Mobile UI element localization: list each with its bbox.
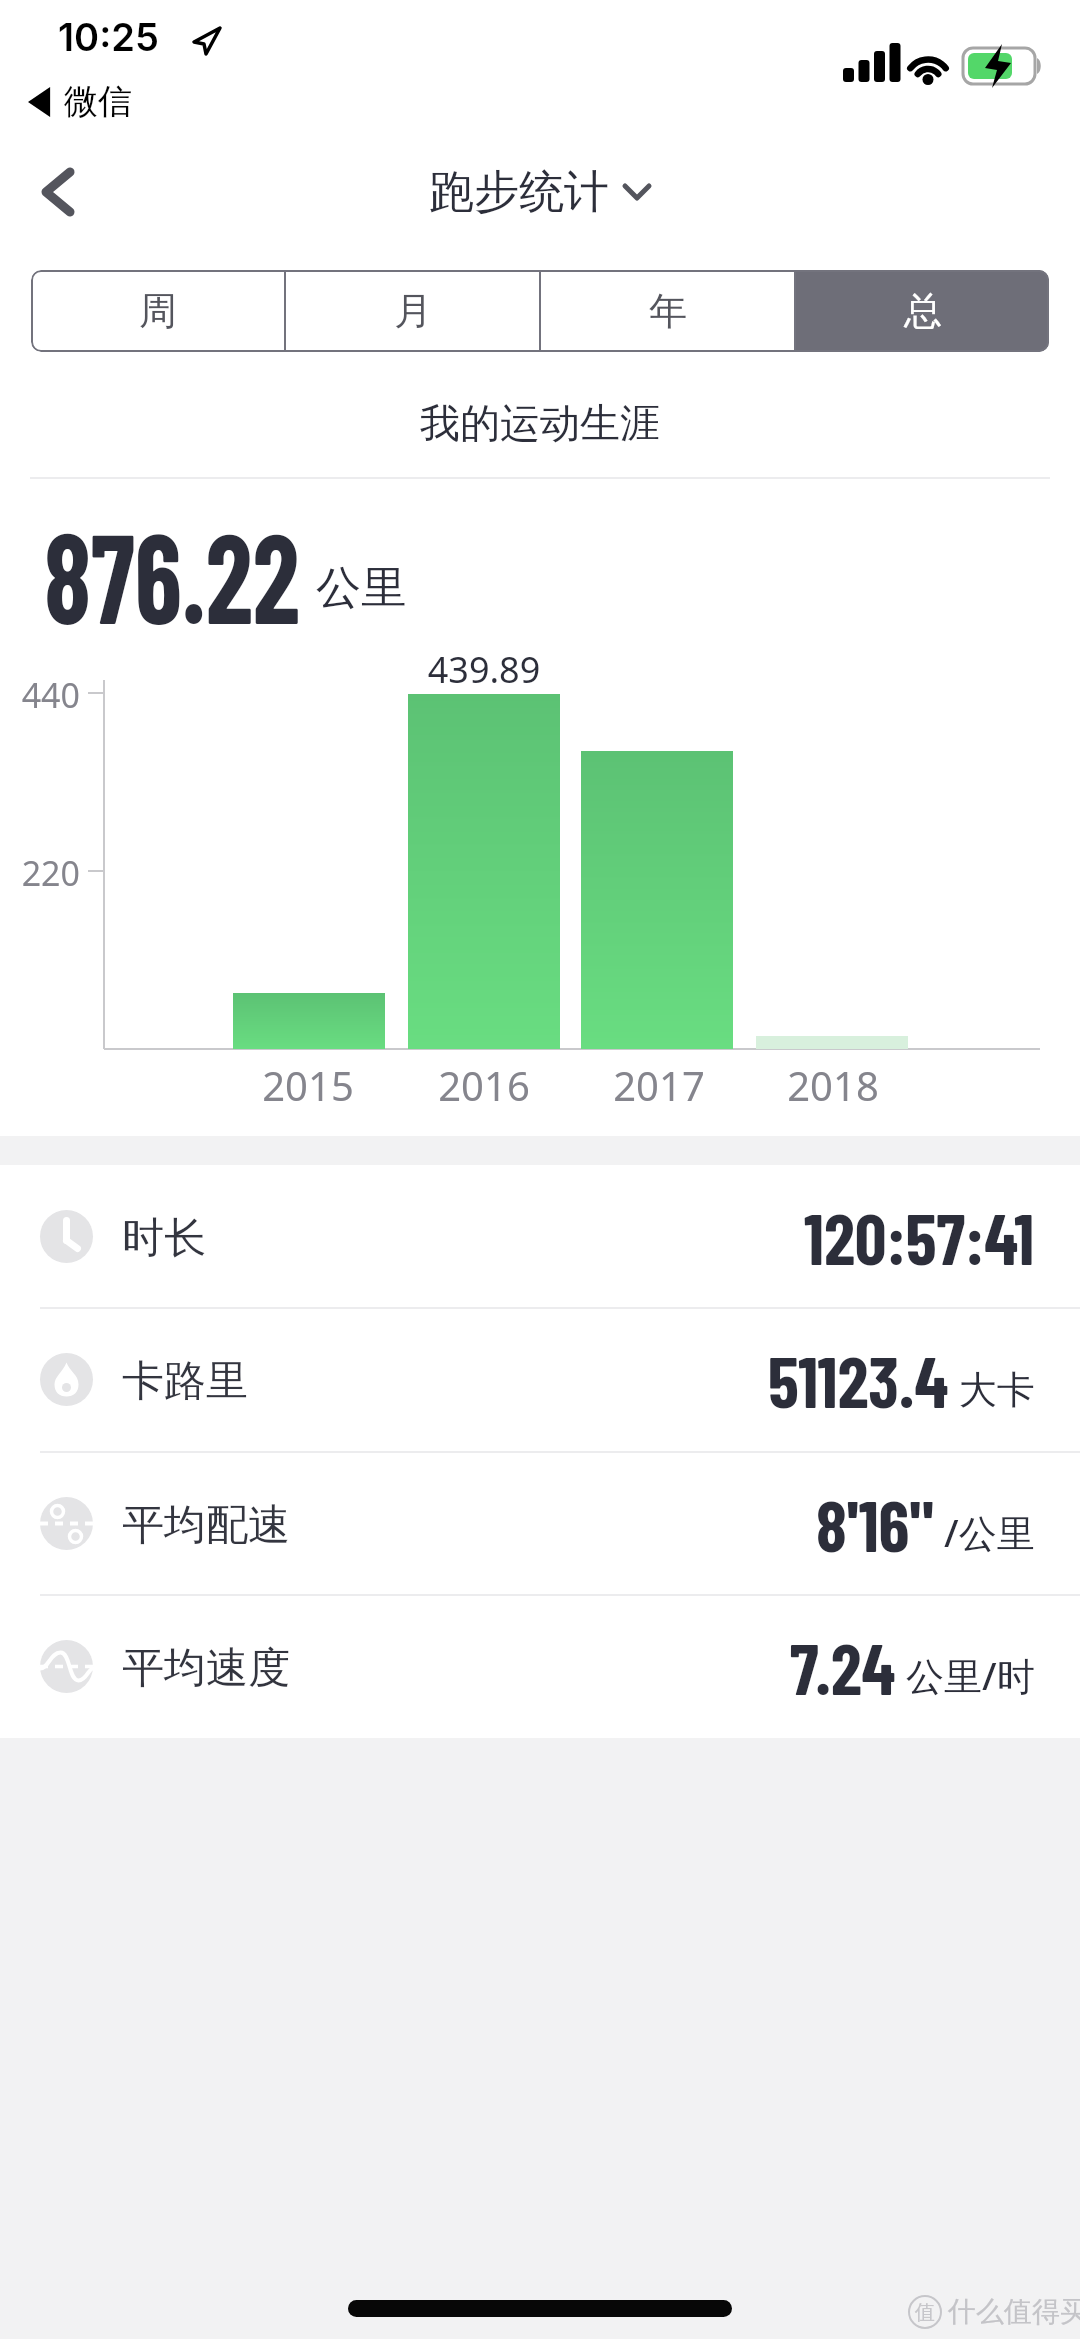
staticText: 卡路里 [122, 1355, 248, 1408]
button[interactable]: 时长 [0, 1165, 1080, 1308]
staticText: 7.24 [790, 1625, 896, 1709]
staticText: 2017 [583, 1058, 735, 1112]
staticText: 大卡 [959, 1366, 1035, 1414]
button[interactable]: 周 [31, 270, 284, 352]
staticText: 平均配速 [122, 1499, 290, 1552]
staticText: 2015 [232, 1058, 384, 1112]
button[interactable]: 平均速度 [0, 1595, 1080, 1738]
staticText: 10:25 [58, 14, 159, 60]
staticText: 我的运动生涯 [420, 398, 660, 448]
staticText: 公里/时 [906, 1649, 1035, 1701]
staticText: 跑步统计 [429, 164, 609, 221]
staticText: 公里 [316, 560, 406, 617]
staticText: 总 [904, 287, 942, 335]
button[interactable] [30, 160, 90, 224]
staticText: 时长 [122, 1212, 206, 1265]
staticText: 周 [139, 287, 177, 335]
staticText: 8'16" [816, 1482, 934, 1566]
staticText: 51123.4 [768, 1338, 949, 1422]
staticText: 2016 [408, 1058, 560, 1112]
button[interactable]: 卡路里 [0, 1308, 1080, 1451]
button[interactable]: 平均配速 [0, 1452, 1080, 1595]
staticText: 值 [915, 2300, 935, 2325]
button[interactable]: 跑步统计 [0, 162, 1080, 222]
staticText: 微信 [64, 80, 132, 123]
button[interactable]: 年 [541, 270, 794, 352]
button[interactable]: 月 [286, 270, 539, 352]
staticText: 年 [649, 287, 687, 335]
staticText: 440 [0, 672, 80, 718]
staticText: 什么值得买 [948, 2294, 1080, 2329]
staticText: 平均速度 [122, 1642, 290, 1695]
staticText: 876.22 [44, 498, 300, 649]
staticText: 120:57:41 [804, 1195, 1035, 1279]
button[interactable]: 总 [796, 270, 1049, 352]
staticText: 220 [0, 850, 80, 896]
staticText: 439.89 [408, 645, 560, 694]
staticText: /公里 [944, 1506, 1035, 1558]
staticText: 月 [394, 287, 432, 335]
staticText: 2018 [757, 1058, 909, 1112]
